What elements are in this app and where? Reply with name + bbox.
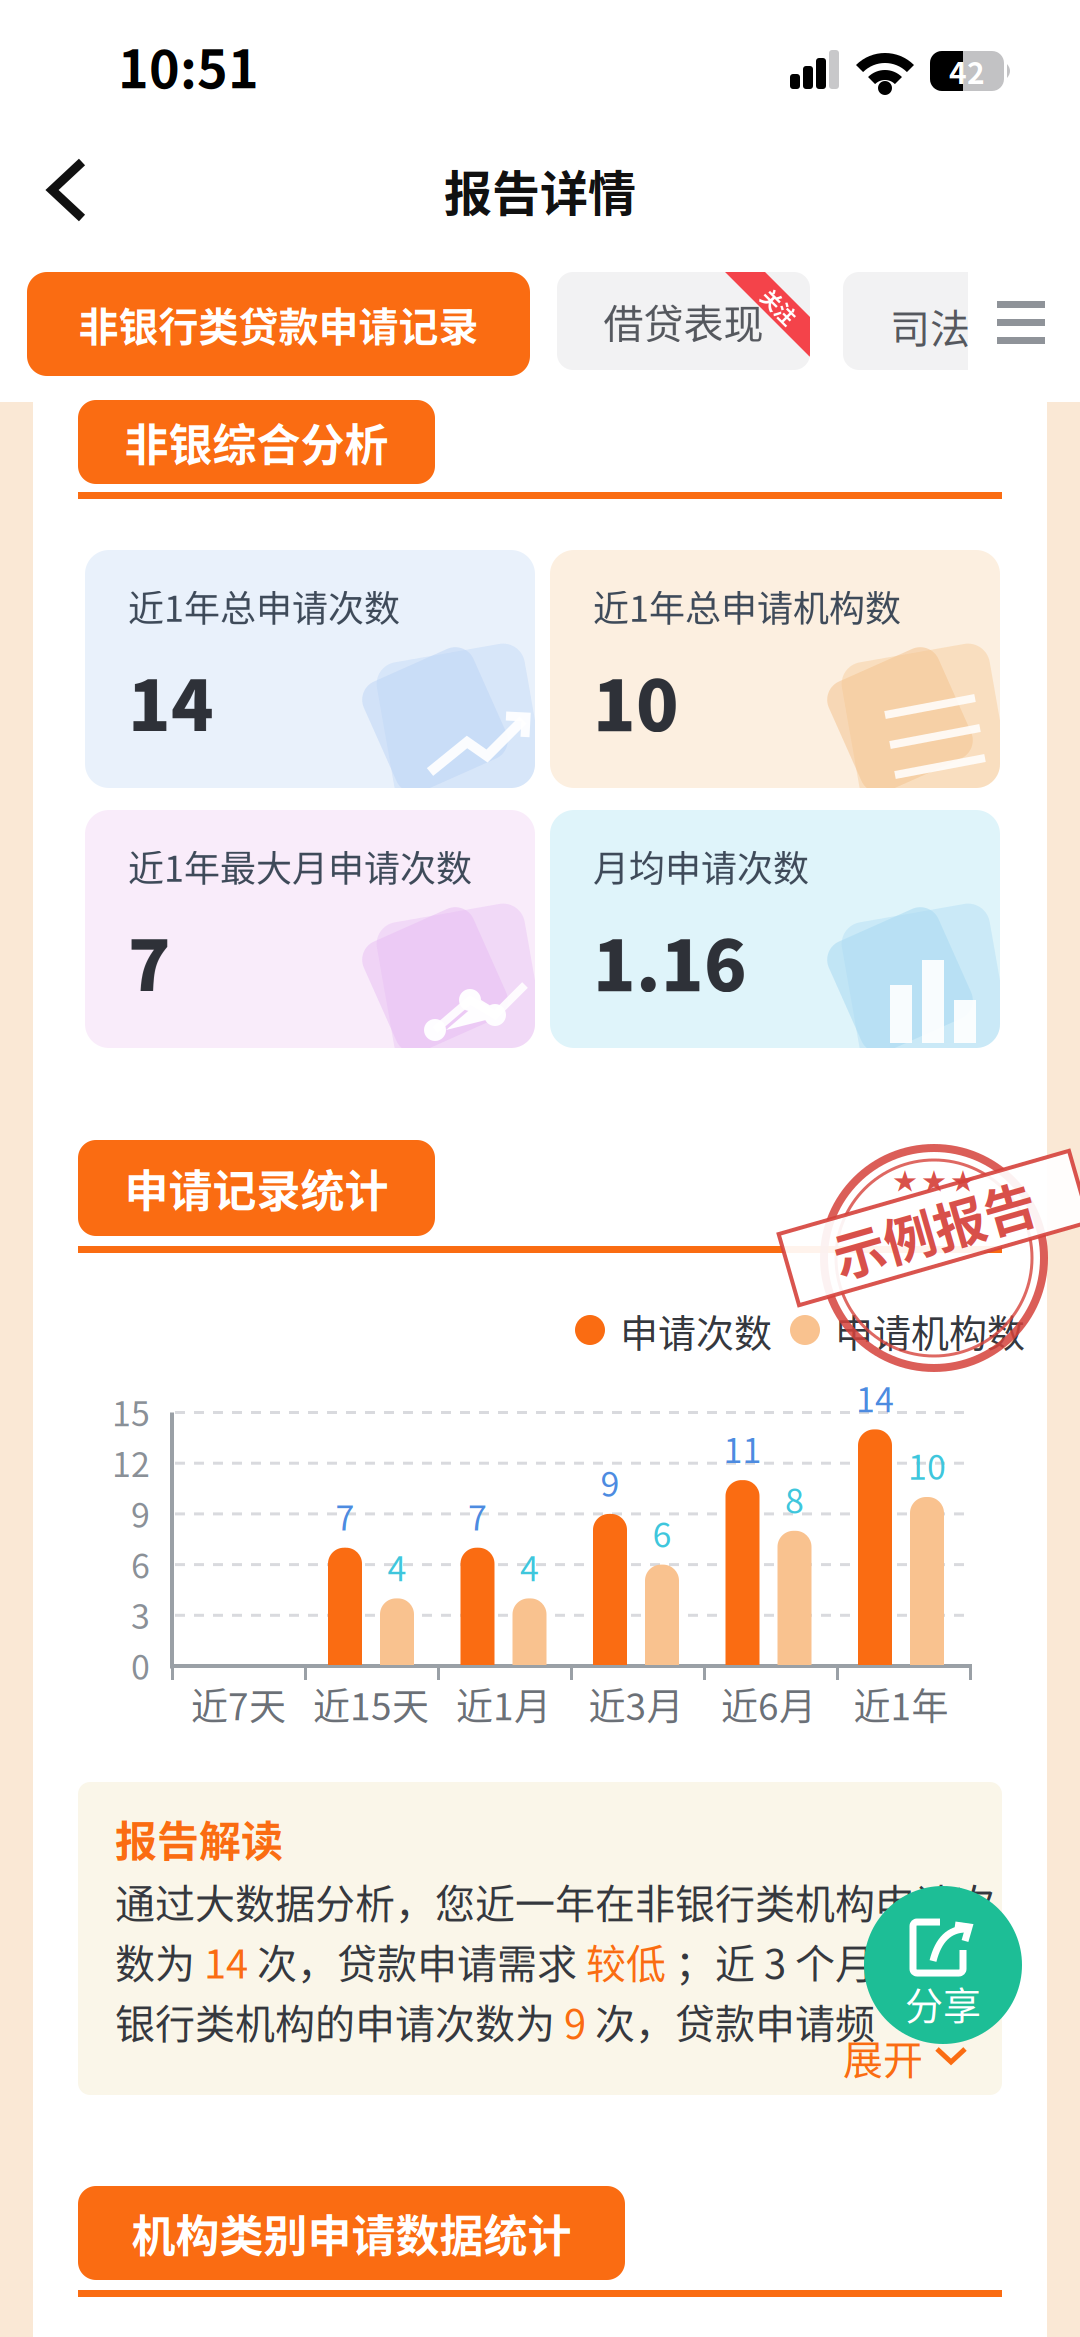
- staticText: 近1年: [853, 1677, 948, 1731]
- staticText: 6: [652, 1508, 671, 1557]
- staticText: 9: [131, 1488, 150, 1537]
- staticText: 9: [564, 1992, 586, 2050]
- staticText: 4: [387, 1542, 406, 1591]
- staticText: 6: [131, 1539, 150, 1588]
- button[interactable]: Share: [863, 1885, 1023, 2045]
- staticText: 14: [204, 1932, 248, 1990]
- staticText: 关注: [759, 292, 799, 321]
- staticText: 10: [908, 1440, 946, 1490]
- staticText: 较低: [586, 1932, 666, 1990]
- staticText: 4: [520, 1542, 539, 1591]
- staticText: 借贷表现: [603, 292, 763, 350]
- staticText: 次，贷款申请需求: [248, 1932, 586, 1990]
- staticText: 机构类别申请数据统计: [131, 2201, 571, 2265]
- staticText: 10: [593, 650, 679, 751]
- staticText: 10:51: [118, 28, 259, 103]
- button[interactable]: 借贷表现: [557, 272, 810, 370]
- staticText: 8: [785, 1474, 804, 1523]
- staticText: 近6月: [721, 1677, 816, 1731]
- staticText: 9: [600, 1457, 619, 1506]
- staticText: 申请机构数: [835, 1303, 1025, 1358]
- staticText: 0: [131, 1640, 150, 1690]
- staticText: 非银综合分析: [124, 410, 388, 474]
- staticText: 11: [723, 1423, 761, 1473]
- staticText: 15: [112, 1387, 150, 1436]
- staticText: 7: [335, 1491, 354, 1540]
- button[interactable]: Back: [36, 154, 100, 226]
- staticText: 3: [131, 1590, 150, 1639]
- staticText: 7: [128, 910, 171, 1011]
- staticText: 数为: [115, 1932, 204, 1990]
- staticText: 月均申请次数: [593, 840, 809, 892]
- staticText: 14: [128, 650, 214, 751]
- staticText: 分享: [905, 1975, 981, 2030]
- staticText: 银行类机构的申请次数为: [115, 1992, 564, 2050]
- staticText: 近3月: [588, 1677, 683, 1731]
- staticText: 近1月: [456, 1677, 551, 1731]
- staticText: 次，贷款申请频: [586, 1992, 875, 2050]
- staticText: 近1年总申请机构数: [593, 580, 901, 632]
- staticText: 示例报告: [830, 1190, 1038, 1266]
- button[interactable]: 司法: [843, 272, 968, 370]
- staticText: ★ ★ ★: [893, 1162, 975, 1196]
- staticText: 42: [949, 49, 985, 93]
- staticText: ；近 3 个月: [666, 1932, 875, 1990]
- button[interactable]: 展开: [843, 2028, 965, 2086]
- staticText: 近15天: [313, 1677, 429, 1731]
- staticText: 近1年总申请次数: [128, 580, 400, 632]
- staticText: 7: [468, 1491, 487, 1540]
- staticText: 12: [112, 1438, 150, 1487]
- staticText: 非银行类贷款申请记录: [78, 295, 478, 353]
- staticText: 申请记录统计: [124, 1156, 388, 1220]
- button[interactable]: 非银行类贷款申请记录: [27, 272, 530, 376]
- staticText: 近7天: [191, 1677, 286, 1731]
- staticText: 展开: [843, 2028, 923, 2086]
- staticText: 14: [856, 1373, 894, 1422]
- staticText: 申请次数: [620, 1303, 772, 1358]
- staticText: 近1年最大月申请次数: [128, 840, 472, 892]
- staticText: 报告详情: [444, 155, 636, 225]
- staticText: 通过大数据分析，您近一年在非银行类机构申请次: [115, 1872, 995, 1930]
- staticText: 司法: [890, 297, 970, 355]
- staticText: 报告解读: [115, 1808, 283, 1869]
- button[interactable]: More tabs: [997, 301, 1045, 344]
- staticText: 1.16: [593, 910, 747, 1011]
